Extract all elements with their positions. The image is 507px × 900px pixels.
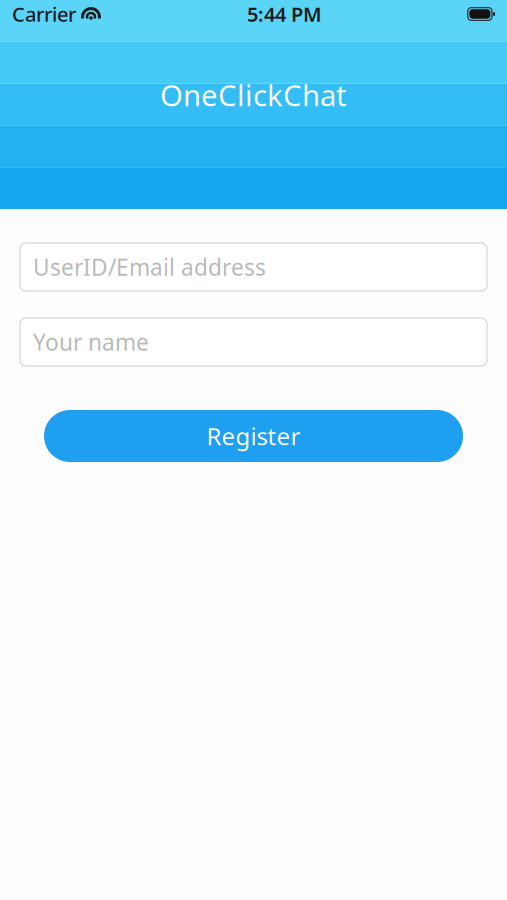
button[interactable]: Register: [44, 410, 463, 462]
staticText: Carrier: [12, 1, 76, 27]
staticText: Register: [206, 420, 300, 452]
staticText: 5:44 PM: [247, 1, 322, 27]
staticText: OneClickChat: [160, 75, 347, 114]
button[interactable]: UserID/Email address: [20, 243, 487, 291]
staticText: Your name: [33, 327, 149, 357]
staticText: UserID/Email address: [33, 252, 266, 282]
button[interactable]: Your name: [20, 318, 487, 366]
